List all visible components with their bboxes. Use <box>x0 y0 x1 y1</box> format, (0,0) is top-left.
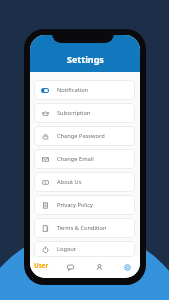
button[interactable]: Profile <box>93 261 106 274</box>
staticText: Change Email <box>57 155 94 163</box>
button[interactable]: Change Email <box>34 149 135 169</box>
staticText: Privacy Policy <box>57 201 93 209</box>
button[interactable]: Change Password <box>34 126 135 146</box>
button[interactable]: Privacy Policy <box>34 195 135 215</box>
staticText: User <box>34 261 49 269</box>
button[interactable]: Logout <box>34 241 135 257</box>
button[interactable]: Terms & Condition <box>34 218 135 238</box>
button[interactable]: Subscription <box>34 103 135 123</box>
staticText: About Us <box>57 178 82 186</box>
staticText: Notification <box>57 86 89 94</box>
staticText: Change Password <box>57 132 105 140</box>
button[interactable]: Notification <box>34 80 135 100</box>
button[interactable]: Settings <box>121 261 134 274</box>
button[interactable]: User <box>34 261 49 269</box>
staticText: Terms & Condition <box>57 224 107 232</box>
staticText: Subscription <box>57 109 91 117</box>
staticText: Settings <box>67 53 104 65</box>
staticText: Logout <box>57 245 76 253</box>
button[interactable]: About Us <box>34 172 135 192</box>
button[interactable]: Messages <box>64 261 77 274</box>
